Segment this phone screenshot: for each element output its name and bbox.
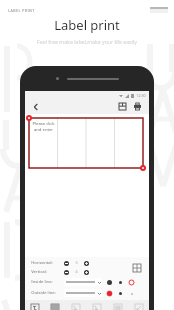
button[interactable]: Print (131, 100, 144, 113)
button[interactable]: Line width (107, 280, 112, 285)
button[interactable]: Line width (107, 291, 112, 296)
button[interactable]: Increase Vertical: (84, 270, 89, 275)
button[interactable]: Outside line: style (64, 289, 102, 297)
button[interactable]: Tool 4 (107, 300, 128, 310)
button[interactable]: Tool 1 (45, 300, 65, 310)
staticText: Vertical: (31, 269, 47, 275)
staticText: 12:30 (136, 93, 146, 98)
staticText: Outside line: (31, 290, 56, 296)
button[interactable]: Resize bottom right (140, 165, 146, 171)
button[interactable]: Tool 5 (128, 300, 149, 310)
button[interactable]: Line width (129, 291, 134, 296)
button[interactable]: Resize top left (26, 115, 32, 121)
button[interactable]: Line width (118, 280, 123, 285)
button[interactable]: Thin line (129, 280, 134, 285)
button[interactable]: Grid layout (130, 261, 143, 274)
button[interactable]: Decrease Vertical: (64, 270, 69, 275)
staticText: 4 (75, 269, 78, 275)
button[interactable]: Decrease Horizontal: (64, 261, 69, 266)
staticText: Label print (54, 16, 120, 34)
button[interactable]: Increase Horizontal: (84, 261, 89, 266)
button[interactable]: Tool 2 (65, 300, 86, 310)
staticText: LABEL PRINT (8, 8, 35, 13)
button[interactable]: Back (30, 101, 42, 113)
button[interactable]: Please click and enter (29, 118, 143, 168)
staticText: Feel free make label,make your life easi… (37, 38, 137, 45)
button[interactable]: Save (116, 100, 129, 113)
button[interactable]: Line width (118, 291, 123, 296)
button[interactable]: Tool 0 (25, 300, 45, 310)
button[interactable]: Inside line: style (64, 278, 102, 286)
staticText: Inside line: (31, 279, 53, 285)
staticText: Horizontal: (31, 260, 53, 266)
button[interactable]: Tool 3 (86, 300, 107, 310)
staticText: Please click and enter (32, 121, 55, 133)
staticText: 3 (75, 260, 78, 266)
